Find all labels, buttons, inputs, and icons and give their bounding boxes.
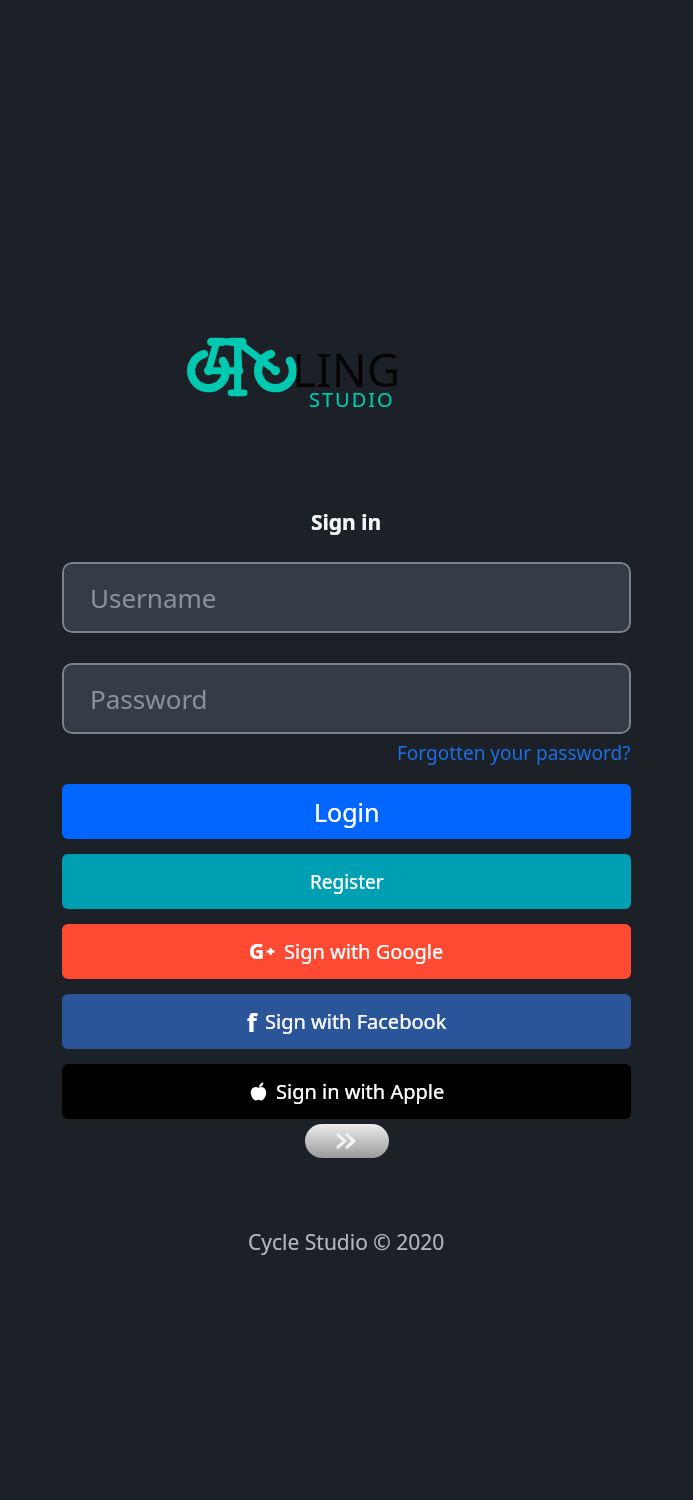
button[interactable]: Password (62, 663, 631, 734)
button[interactable]: Register (62, 854, 631, 909)
button[interactable]: Login (62, 784, 631, 839)
staticText: Sign in (311, 508, 382, 537)
staticText: Sign with Google (284, 938, 444, 965)
staticText: Forgotten your password? (397, 740, 631, 766)
staticText: f (247, 1005, 257, 1039)
staticText: Register (310, 869, 384, 895)
button[interactable]: G (62, 924, 631, 979)
button[interactable]: Sign in with Apple (62, 1064, 631, 1119)
staticText: LING (292, 338, 401, 401)
staticText: STUDIO (309, 386, 395, 413)
staticText: G (249, 937, 265, 966)
staticText: Cycle Studio © 2020 (248, 1228, 445, 1257)
button[interactable]: Next (305, 1124, 389, 1158)
button[interactable]: Forgotten your password? (397, 740, 631, 766)
staticText: Username (90, 580, 217, 615)
staticText: Password (90, 681, 208, 716)
staticText: Login (314, 795, 380, 829)
staticText: Sign in with Apple (276, 1078, 445, 1105)
button[interactable]: f (62, 994, 631, 1049)
button[interactable]: Username (62, 562, 631, 633)
staticText: Sign with Facebook (265, 1008, 447, 1035)
